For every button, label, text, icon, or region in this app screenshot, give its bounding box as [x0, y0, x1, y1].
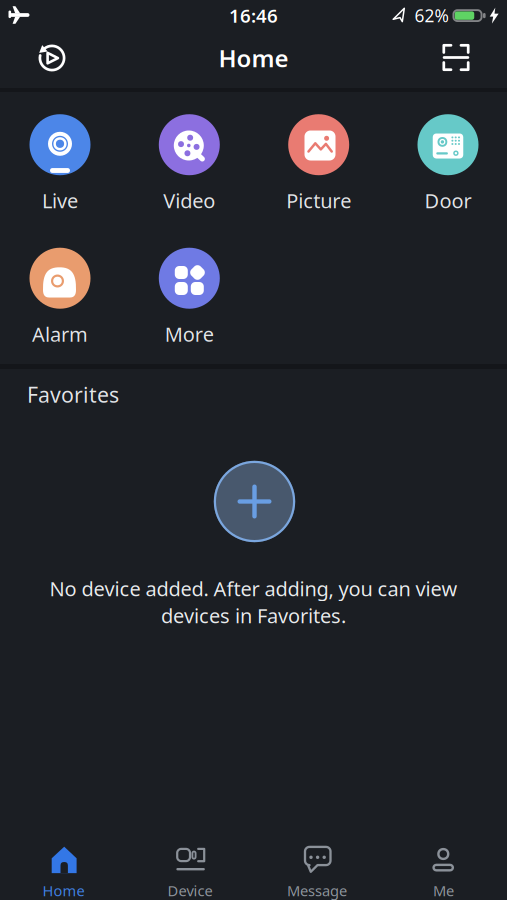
button[interactable]: Device [168, 844, 213, 900]
staticText: 62% [414, 4, 448, 27]
staticText: No device added. After adding, you can v… [49, 575, 457, 602]
staticText: Favorites [27, 380, 119, 409]
button[interactable]: Home [42, 844, 84, 900]
staticText: Live [42, 187, 78, 214]
staticText: Picture [286, 187, 351, 214]
staticText: More [165, 321, 214, 347]
button[interactable]: Me [430, 844, 458, 900]
staticText: Message [287, 881, 347, 900]
button[interactable]: Picture [286, 114, 351, 214]
staticText: 16:46 [229, 3, 278, 28]
staticText: Me [433, 881, 454, 900]
button[interactable]: Add device [214, 461, 295, 542]
button[interactable]: Alarm [29, 248, 90, 347]
button[interactable]: Playback [30, 36, 74, 80]
staticText: Home [42, 881, 84, 900]
button[interactable]: Message [287, 844, 347, 900]
staticText: devices in Favorites. [161, 602, 346, 629]
staticText: Video [163, 187, 215, 214]
staticText: Device [168, 881, 213, 900]
button[interactable]: Door [417, 114, 478, 214]
staticText: Alarm [32, 321, 88, 347]
button[interactable]: Live [29, 114, 90, 214]
button[interactable]: More [159, 248, 220, 347]
staticText: Door [424, 187, 471, 214]
button[interactable]: Scan [434, 35, 478, 79]
button[interactable]: Video [159, 114, 220, 214]
staticText: Home [218, 42, 288, 74]
